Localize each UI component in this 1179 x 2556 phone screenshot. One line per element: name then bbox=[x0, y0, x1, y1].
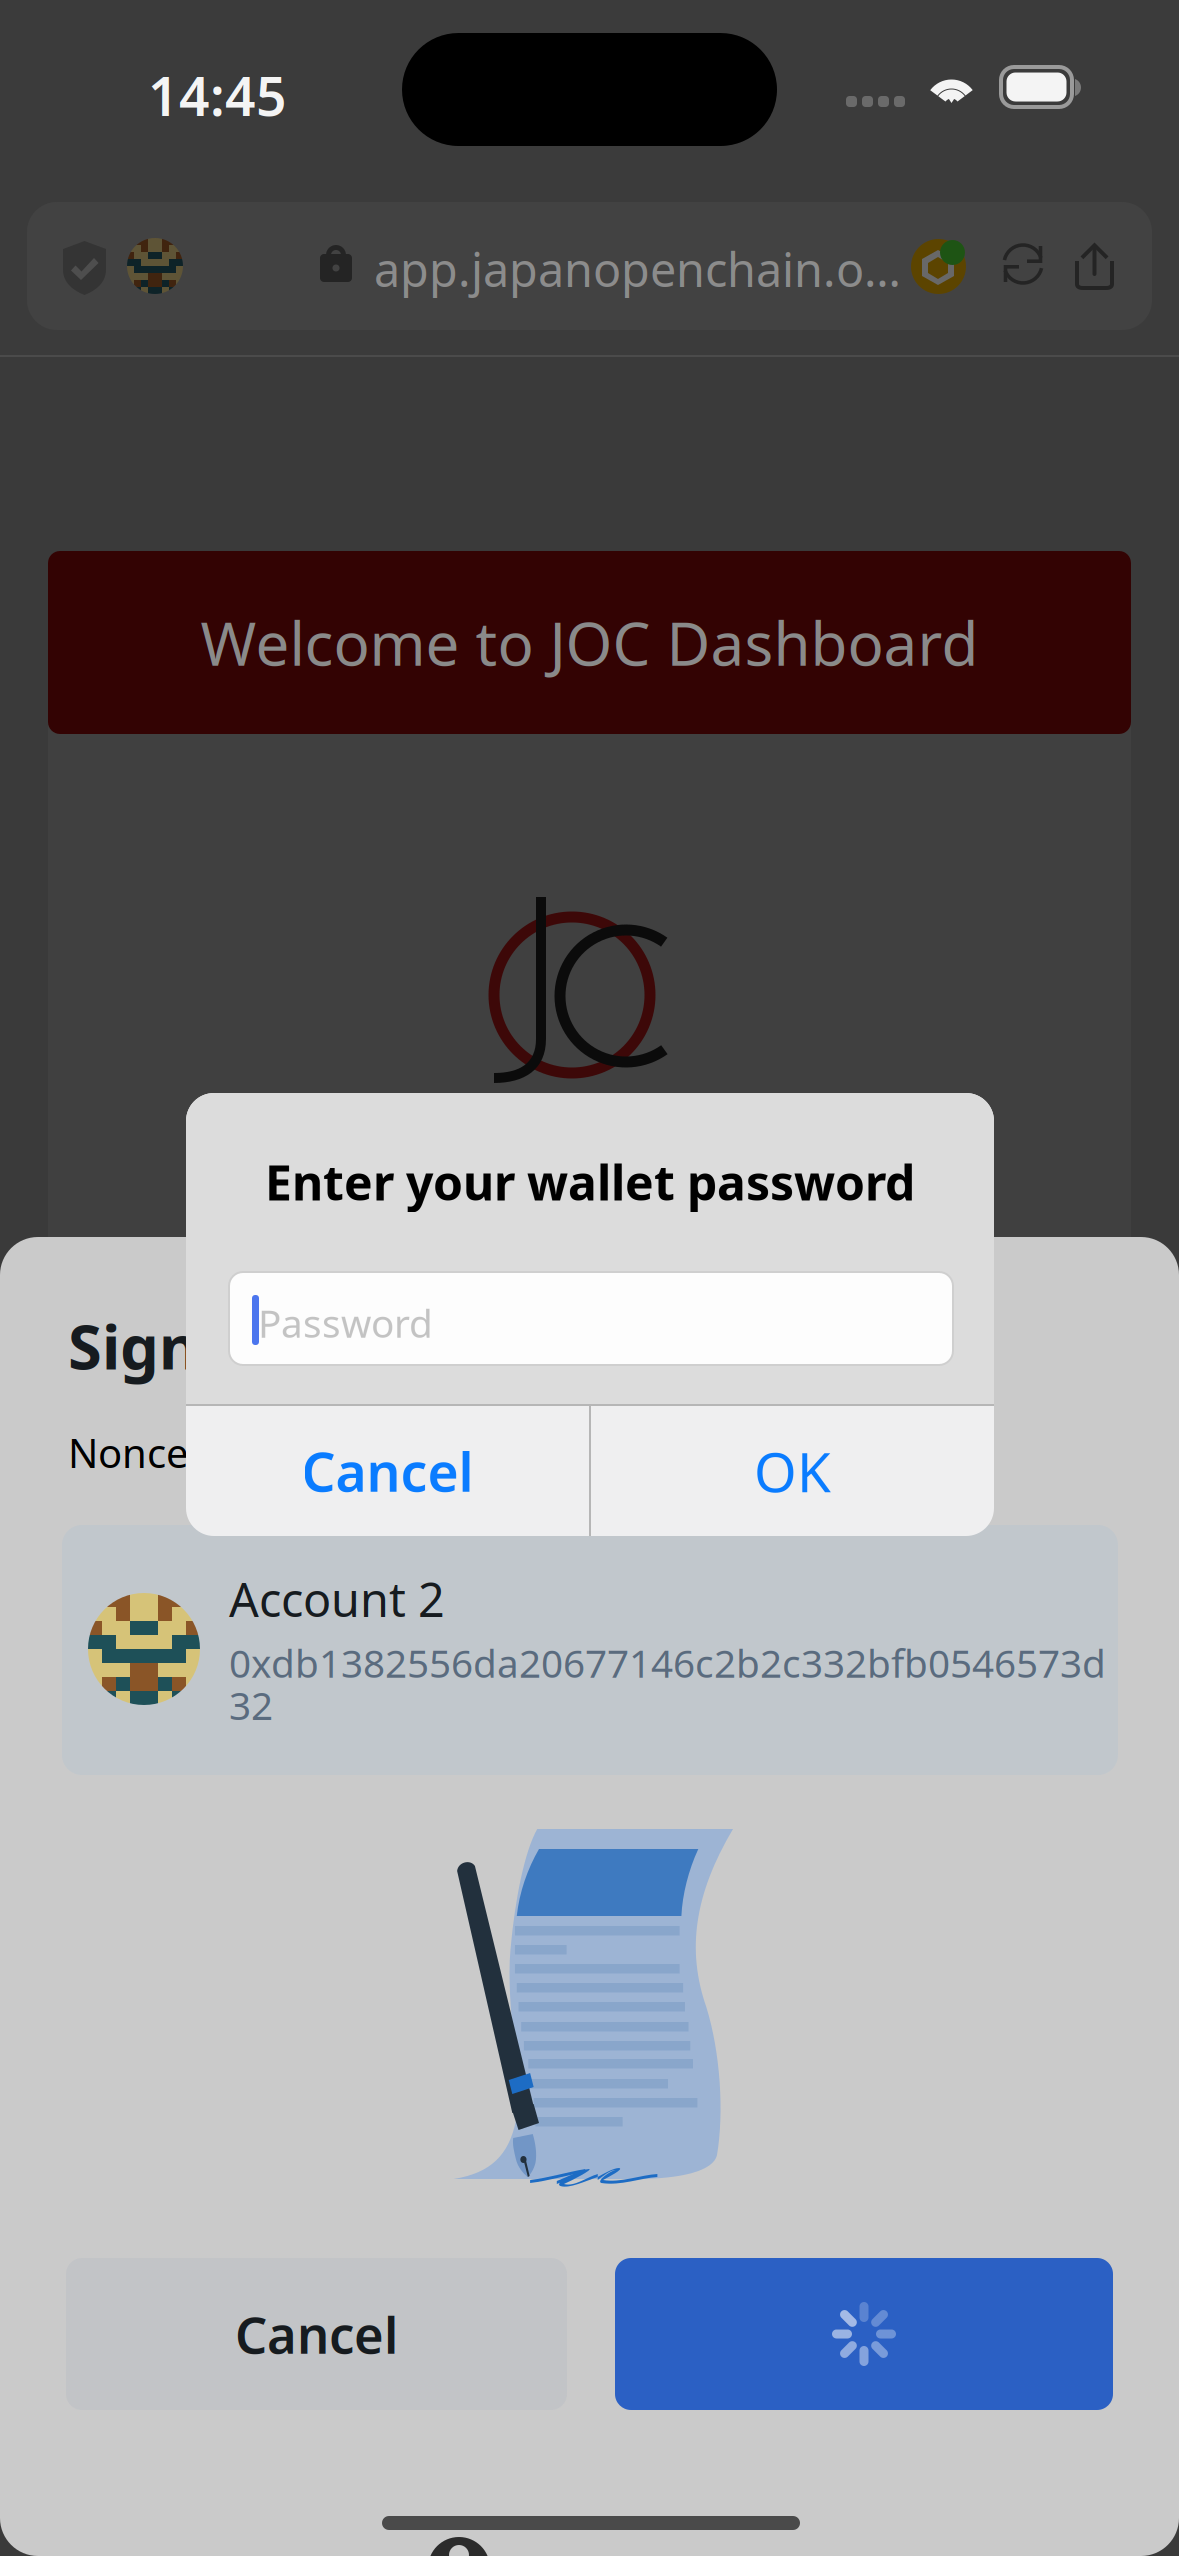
button[interactable]: Share bbox=[1075, 242, 1114, 290]
staticText: 0xdb1382556da20677146c2b2c332bfb0546573d bbox=[229, 1637, 1106, 1688]
staticText: app.japanopenchain.o… bbox=[374, 238, 901, 300]
button[interactable]: Wallet extension bbox=[911, 239, 966, 294]
staticText: Cancel bbox=[235, 2300, 398, 2368]
staticText: 14:45 bbox=[148, 60, 287, 131]
staticText: Welcome to JOC Dashboard bbox=[200, 603, 978, 682]
staticText: OK bbox=[754, 1435, 831, 1507]
staticText: Enter your wallet password bbox=[265, 1150, 915, 1214]
button[interactable]: Site identity bbox=[127, 238, 183, 294]
staticText: 32 bbox=[229, 1679, 273, 1731]
button[interactable]: Reload page bbox=[1001, 242, 1045, 286]
staticText: Password bbox=[258, 1297, 433, 1348]
button[interactable]: Cancel bbox=[186, 1406, 589, 1536]
staticText: Account 2 bbox=[229, 1568, 445, 1630]
button[interactable]: Sign bbox=[615, 2258, 1113, 2410]
staticText: Nonce bbox=[68, 1426, 189, 1479]
staticText: Cancel bbox=[301, 1436, 473, 1506]
button[interactable]: Privacy report bbox=[63, 241, 106, 295]
button[interactable]: Cancel bbox=[66, 2258, 567, 2410]
button[interactable]: OK bbox=[591, 1406, 994, 1536]
staticText: Sign bbox=[68, 1305, 199, 1386]
